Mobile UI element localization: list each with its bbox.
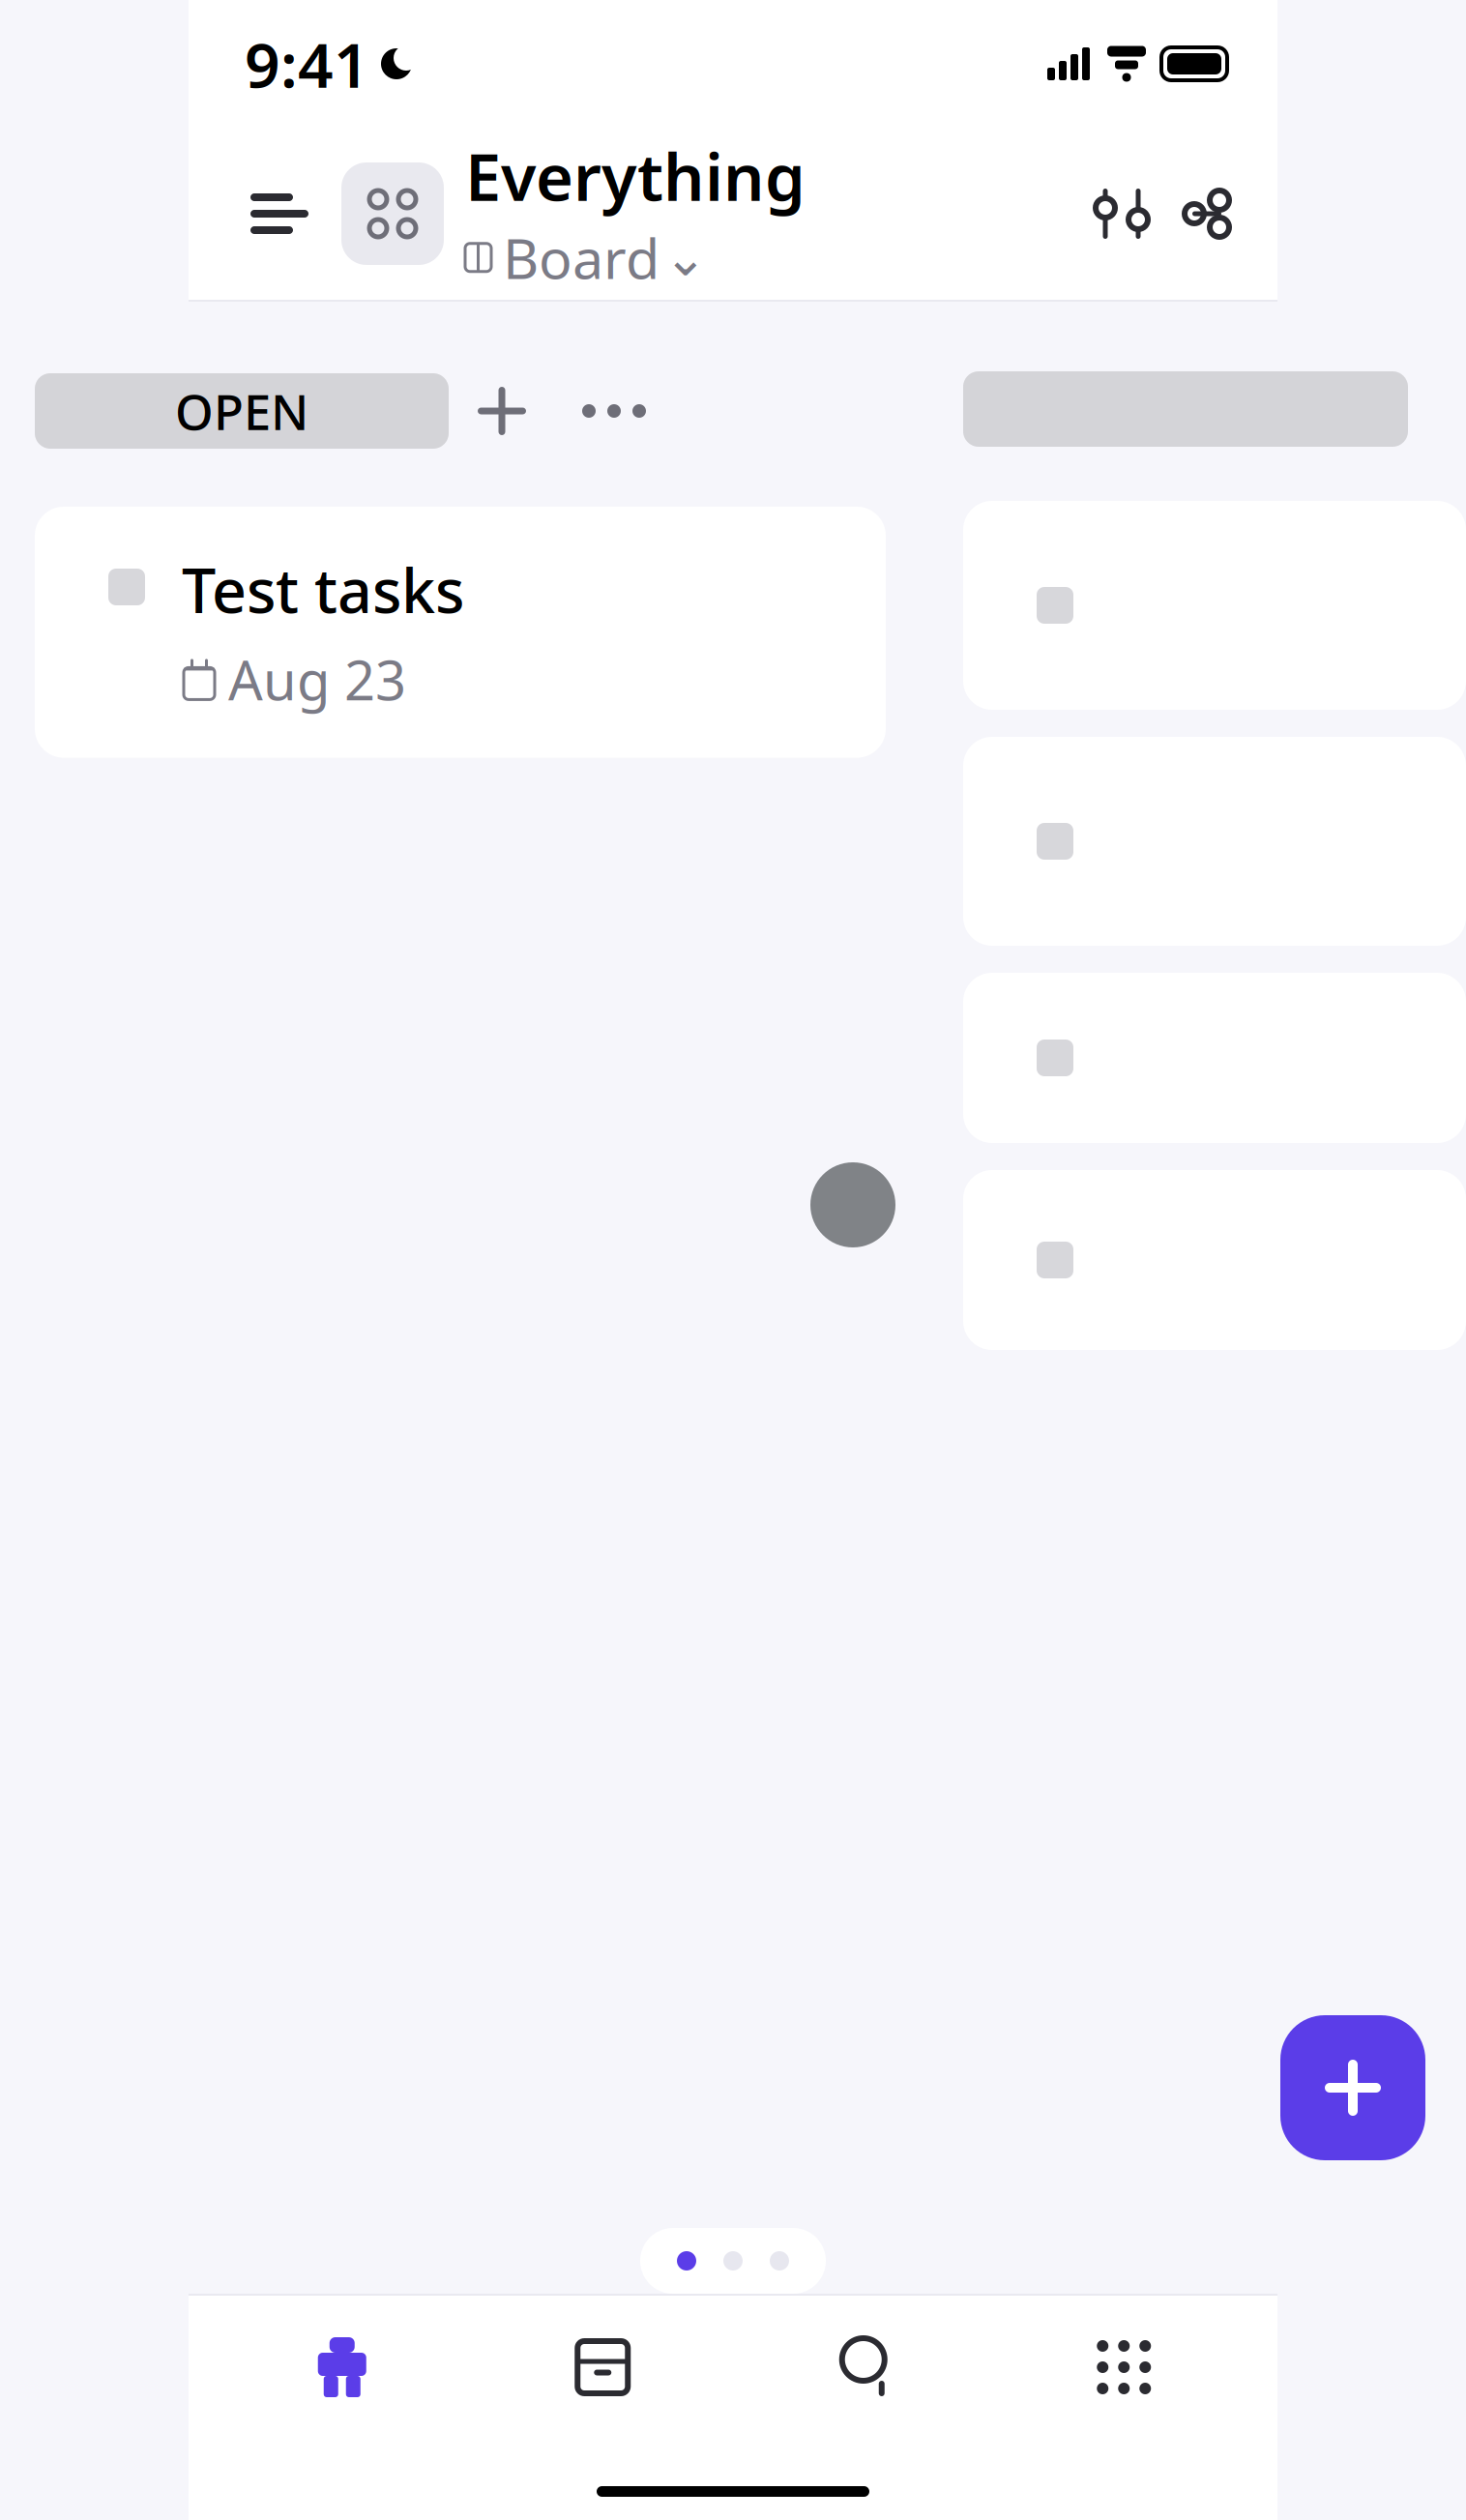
button[interactable]: Search <box>733 2309 994 2425</box>
staticText: Test tasks <box>182 549 464 630</box>
staticText: Board <box>503 221 660 294</box>
button[interactable]: Home <box>212 2309 472 2425</box>
button[interactable]: Column options <box>555 377 673 445</box>
button[interactable]: Apps <box>994 2309 1254 2425</box>
button[interactable]: Add card <box>449 371 555 451</box>
button[interactable]: Everything <box>328 133 806 294</box>
button[interactable]: Create task <box>1280 2015 1425 2160</box>
button[interactable]: Menu <box>231 163 328 264</box>
button[interactable]: OPEN <box>35 373 449 449</box>
staticText: ⌄ <box>664 228 707 287</box>
staticText: Aug 23 <box>228 643 406 715</box>
button[interactable]: Share <box>1161 186 1235 242</box>
button[interactable]: Inbox <box>472 2309 733 2425</box>
staticText: Everything <box>465 133 806 219</box>
staticText: OPEN <box>175 378 308 444</box>
button[interactable]: Filters <box>1082 188 1161 240</box>
button[interactable]: Test tasks <box>35 507 886 758</box>
staticText: 9:41 <box>245 23 369 105</box>
